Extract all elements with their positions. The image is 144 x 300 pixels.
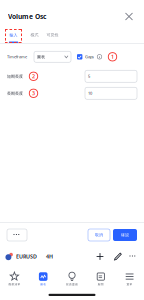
staticText: Volume Osc (8, 12, 46, 21)
button[interactable]: 確認 (113, 229, 137, 241)
button[interactable]: 投資靈感 (58, 269, 86, 289)
button[interactable]: 觀察清單 (0, 269, 29, 289)
staticText: EURUSD (16, 253, 37, 260)
staticText: 樣式 (30, 32, 38, 37)
button[interactable]: 輸入 (5, 29, 22, 43)
staticText: 3 (32, 90, 35, 97)
button[interactable]: 選單 (115, 269, 144, 289)
button[interactable]: Add (93, 249, 107, 263)
button[interactable]: 5 (85, 70, 137, 82)
button[interactable]: Close (122, 9, 136, 23)
staticText: 確認 (121, 232, 129, 237)
staticText: 5 (88, 74, 90, 79)
staticText: 短期長度 (7, 74, 23, 79)
button[interactable]: 10 (85, 87, 137, 99)
staticText: 2 (32, 73, 35, 80)
button[interactable]: 可見性 (46, 29, 58, 43)
staticText: 10 (88, 91, 92, 96)
button[interactable]: Gaps (77, 54, 94, 59)
staticText: 可見性 (46, 32, 58, 37)
button[interactable]: More (127, 249, 139, 263)
button[interactable]: 樣式 (30, 29, 38, 43)
staticText: 選單 (127, 283, 133, 286)
staticText: 圖表 (40, 283, 46, 286)
button[interactable]: 圖表 (34, 51, 71, 62)
button[interactable]: More options (7, 229, 27, 241)
button[interactable]: 圖表 (29, 269, 58, 289)
staticText: 4H (46, 253, 53, 260)
button[interactable]: 取消 (88, 229, 110, 241)
staticText: 長期長度 (7, 91, 23, 96)
staticText: Timeframe (7, 54, 27, 59)
staticText: 投資靈感 (66, 283, 78, 286)
staticText: Gaps (85, 54, 94, 59)
staticText: 取消 (95, 232, 103, 237)
staticText: 圖表 (37, 54, 45, 59)
staticText: 觀察清單 (8, 283, 20, 286)
staticText: 輸入 (9, 33, 17, 38)
button[interactable]: Draw (111, 249, 125, 263)
staticText: 1 (111, 53, 114, 60)
button[interactable]: 新聞 (86, 269, 115, 289)
staticText: 新聞 (98, 283, 104, 286)
